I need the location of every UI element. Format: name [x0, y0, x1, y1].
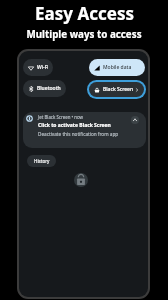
staticText: Click to activate Black Screen — [38, 122, 111, 129]
staticText: Jet Black Screen • now — [38, 114, 84, 120]
other: Black screen active — [74, 173, 88, 187]
staticText: Multiple ways to access — [26, 28, 142, 41]
staticText: Bluetooth — [37, 85, 61, 92]
staticText: Mobile data — [103, 64, 132, 71]
staticText: Easy Access — [35, 2, 134, 25]
button[interactable]: Bluetooth — [23, 80, 66, 97]
staticText: Wi-Fi — [37, 64, 48, 71]
staticText: History — [34, 158, 50, 164]
button[interactable]: Black Screen — [89, 82, 144, 97]
button[interactable]: Mobile data — [89, 59, 145, 76]
button[interactable]: Collapse notification — [23, 112, 146, 148]
button[interactable]: Wi-Fi — [23, 59, 53, 76]
staticText: Deactivate this notification from app — [38, 131, 119, 137]
button[interactable]: Collapse notification — [131, 116, 139, 124]
button[interactable]: History — [27, 155, 56, 167]
staticText: Black Screen — [103, 86, 134, 93]
